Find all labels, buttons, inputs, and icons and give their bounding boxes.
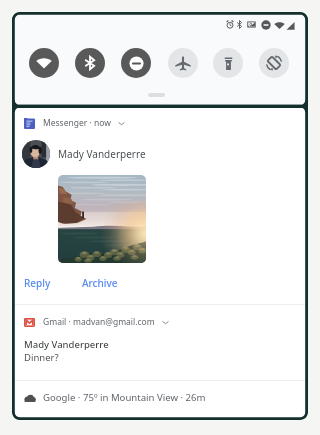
staticText: Mady Vanderperre (58, 147, 146, 161)
staticText: Reply (24, 276, 51, 290)
button[interactable]: Airplane mode (168, 48, 198, 78)
button[interactable]: Wi-Fi (29, 48, 59, 78)
button[interactable]: Bluetooth (75, 48, 105, 78)
button[interactable]: Do not disturb (121, 48, 151, 78)
staticText: Google · 75º in Mountain View · 26m (43, 391, 206, 404)
staticText: Gmail · madvan@gmail.com (43, 316, 155, 328)
button[interactable]: Google · 75º in Mountain View · 26m (12, 384, 308, 411)
staticText: Archive (82, 276, 118, 290)
staticText: Messenger · now (43, 117, 111, 129)
button[interactable]: Reply (20, 271, 55, 295)
button[interactable]: Archive (78, 271, 122, 295)
button[interactable]: Flashlight (213, 48, 243, 78)
staticText: Mady Vanderperre (24, 338, 109, 351)
staticText: Dinner? (24, 351, 59, 364)
button[interactable]: Messenger · now (12, 108, 308, 204)
button[interactable]: Gmail · madvan@gmail.com (12, 305, 308, 380)
button[interactable]: Auto rotate (259, 48, 289, 78)
